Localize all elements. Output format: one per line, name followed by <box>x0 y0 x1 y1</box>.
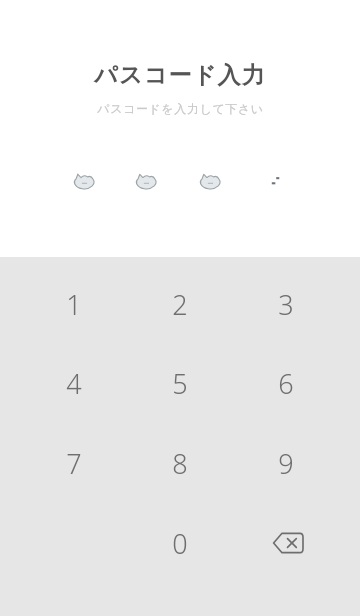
button[interactable]: 1 <box>24 269 124 339</box>
staticText: 7 <box>66 445 82 482</box>
button[interactable]: 9 <box>236 428 336 498</box>
staticText: パスコード入力 <box>94 61 266 90</box>
button[interactable]: 3 <box>236 269 336 339</box>
staticText: 8 <box>172 445 188 482</box>
staticText: パスコードを入力して下さい <box>97 101 264 116</box>
staticText: 0 <box>172 525 188 562</box>
button[interactable]: 8 <box>130 428 230 498</box>
button[interactable]: 6 <box>236 348 336 418</box>
staticText: 3 <box>278 286 294 323</box>
button[interactable]: 2 <box>130 269 230 339</box>
staticText: 9 <box>278 445 294 482</box>
button[interactable]: 7 <box>24 428 124 498</box>
staticText: 4 <box>66 365 82 402</box>
button[interactable]: 5 <box>130 348 230 418</box>
button[interactable]: Delete <box>243 508 333 578</box>
button[interactable]: 4 <box>24 348 124 418</box>
staticText: 1 <box>66 286 82 323</box>
staticText: 2 <box>172 286 188 323</box>
staticText: 6 <box>278 365 294 402</box>
staticText: 5 <box>172 365 188 402</box>
button[interactable]: 0 <box>130 508 230 578</box>
